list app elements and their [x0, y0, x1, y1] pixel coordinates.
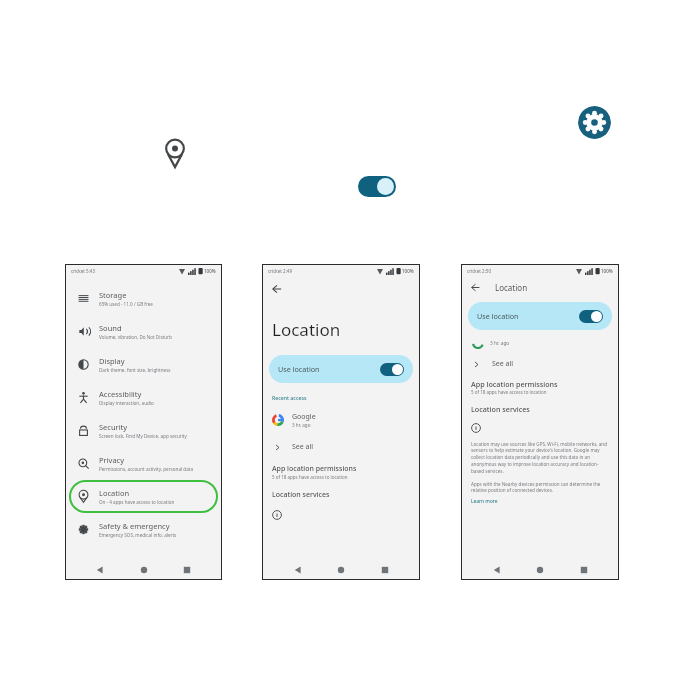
button[interactable]: Home [333, 562, 349, 578]
staticText: 5 of 18 apps have access to location [471, 389, 547, 395]
staticText: Use location [278, 364, 320, 374]
button[interactable]: Privacy [69, 447, 218, 480]
staticText: On - 4 apps have access to location [99, 499, 175, 505]
button[interactable]: Back [270, 282, 284, 296]
staticText: App location permissions [471, 379, 558, 389]
staticText: See all [492, 359, 514, 369]
button[interactable]: Use location [468, 302, 612, 330]
staticText: Safety & emergency [99, 521, 170, 531]
button[interactable]: Storage [69, 282, 218, 315]
staticText: Google [292, 412, 316, 422]
staticText: Location may use sources like GPS, Wi-Fi… [471, 441, 609, 475]
staticText: Use location [477, 311, 519, 321]
button[interactable]: Use location [269, 355, 413, 383]
staticText: App location permissions [272, 464, 357, 474]
staticText: 5 of 18 apps have access to location [272, 474, 348, 480]
staticText: Storage [99, 290, 127, 300]
button[interactable]: Location services [272, 490, 330, 500]
button[interactable]: See all [472, 356, 619, 372]
staticText: Location [99, 488, 130, 498]
staticText: cricket 5:43 [71, 268, 96, 274]
button[interactable]: Safety & emergency [69, 513, 218, 546]
staticText: Display interaction, audio [99, 400, 154, 406]
button[interactable]: Back [290, 562, 306, 578]
staticText: Emergency SOS, medical info, alerts [99, 532, 177, 538]
staticText: Security [99, 422, 128, 432]
staticText: Apps with the Nearby devices permission … [471, 481, 609, 494]
button[interactable]: Sound [69, 315, 218, 348]
staticText: Accessibility [99, 389, 142, 399]
staticText: Volume, vibration, Do Not Disturb [99, 334, 172, 340]
staticText: 3 hr. ago [490, 340, 510, 347]
staticText: Privacy [99, 455, 125, 465]
button[interactable]: Location [162, 137, 188, 169]
staticText: cricket 2:49 [268, 268, 293, 274]
staticText: Permissions, account activity, personal … [99, 466, 193, 472]
button[interactable]: Home [136, 562, 152, 578]
button[interactable]: Display [69, 348, 218, 381]
button[interactable]: Recents [179, 562, 195, 578]
button[interactable]: Settings [578, 106, 611, 139]
staticText: Screen lock, Find My Device, app securit… [99, 433, 187, 439]
button[interactable]: Google [272, 409, 420, 431]
button[interactable]: Back [92, 562, 108, 578]
button[interactable]: Back [469, 281, 482, 294]
staticText: 65% used - 11.0 / GB free [99, 301, 153, 307]
button[interactable]: Back [489, 562, 505, 578]
button[interactable]: See all [273, 438, 420, 456]
button[interactable]: Toggle [358, 176, 396, 197]
button[interactable]: Accessibility [69, 381, 218, 414]
button[interactable]: Location services [471, 404, 530, 414]
staticText: Location [495, 282, 528, 293]
button[interactable]: Location [69, 480, 218, 513]
staticText: 100% [402, 268, 414, 274]
staticText: Display [99, 356, 125, 366]
staticText: cricket 2:50 [467, 268, 492, 274]
staticText: 100% [204, 268, 216, 274]
button[interactable]: Recents [576, 562, 592, 578]
staticText: See all [292, 442, 314, 452]
button[interactable]: Home [532, 562, 548, 578]
staticText: Dark theme, font size, brightness [99, 367, 171, 373]
staticText: Recent access [272, 394, 307, 401]
staticText: 3 hr. ago [292, 422, 311, 428]
button[interactable]: Learn more [471, 498, 498, 505]
button[interactable]: Recents [377, 562, 393, 578]
staticText: Location [272, 318, 341, 341]
staticText: 100% [601, 268, 613, 274]
button[interactable]: Security [69, 414, 218, 447]
staticText: Sound [99, 323, 122, 333]
